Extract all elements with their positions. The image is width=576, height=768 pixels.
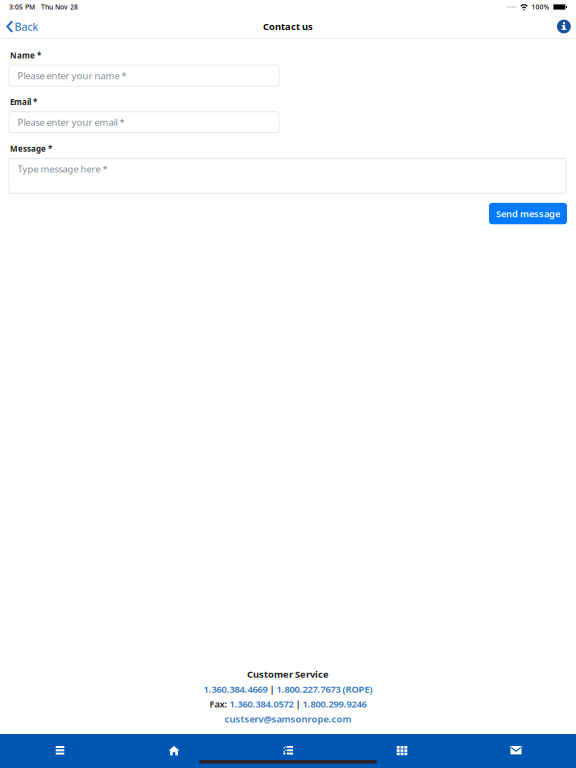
button[interactable]: Information [549, 15, 576, 38]
button[interactable]: Back [0, 14, 46, 39]
staticText: Customer Service [247, 668, 329, 680]
staticText: Back [14, 19, 38, 34]
staticText: Thu Nov 28 [41, 3, 78, 11]
staticText: Message * [10, 143, 52, 154]
staticText: Fax: [209, 698, 229, 710]
staticText: 1.800.299.9246 [302, 698, 366, 710]
button[interactable]: Home [117, 734, 231, 768]
button[interactable]: Catalog [231, 734, 345, 768]
staticText: 100% [531, 3, 549, 11]
staticText: Please enter your name * [17, 69, 126, 82]
staticText: 1.360.384.0572 [229, 698, 293, 710]
staticText: custserv@samsonrope.com [224, 713, 351, 725]
staticText: 1.800.227.7673 (ROPE) [276, 683, 372, 695]
button[interactable]: Contact [459, 734, 573, 768]
staticText: Contact us [263, 20, 313, 33]
button[interactable]: Send message [489, 203, 567, 224]
button[interactable]: Products [345, 734, 459, 768]
staticText: Name * [10, 50, 41, 61]
staticText: | [267, 683, 276, 695]
staticText: 1.360.384.4669 [203, 683, 267, 695]
staticText: Type message here * [17, 163, 107, 175]
staticText: | [293, 698, 302, 710]
staticText: Send message [496, 207, 560, 220]
staticText: Please enter your email * [17, 116, 124, 128]
button[interactable]: Menu [3, 734, 117, 768]
staticText: Email * [10, 97, 37, 107]
staticText: 3:05 PM [9, 3, 35, 11]
